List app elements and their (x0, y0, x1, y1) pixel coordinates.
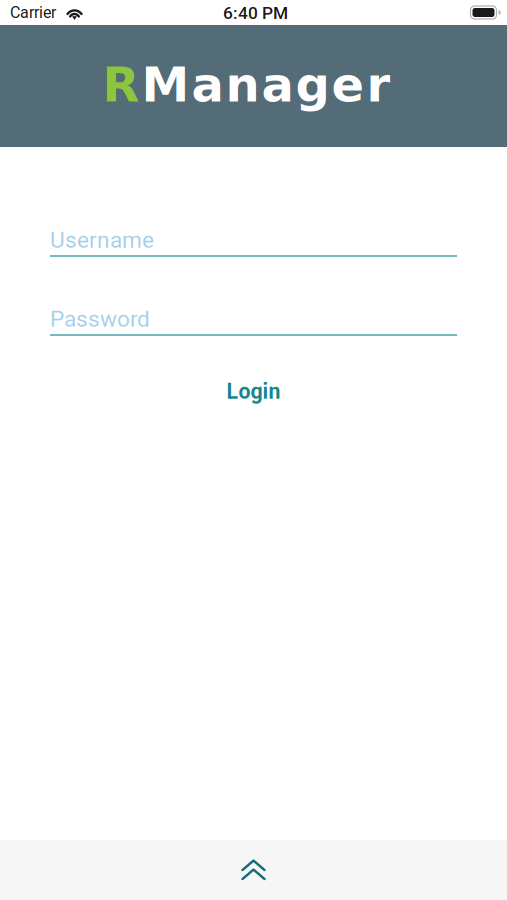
staticText: g (295, 57, 329, 113)
staticText: n (225, 57, 259, 113)
button[interactable]: Scroll to top (0, 840, 507, 900)
staticText: r (366, 57, 390, 113)
staticText: a (191, 57, 223, 113)
staticText: e (331, 57, 364, 113)
staticText: Password (50, 306, 150, 332)
staticText: Login (226, 379, 280, 404)
staticText: Carrier (10, 3, 56, 22)
button[interactable]: Login (50, 369, 457, 408)
staticText: a (261, 57, 293, 113)
staticText: 6:40 PM (223, 3, 288, 23)
staticText: M (141, 57, 189, 113)
staticText: R (102, 57, 139, 113)
staticText: Username (50, 227, 154, 253)
